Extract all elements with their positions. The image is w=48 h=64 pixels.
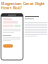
button[interactable]: Read more (3, 44, 13, 48)
staticText: Heart Risk? (1, 5, 22, 10)
staticText: Magnesium Can at Night (1, 1, 45, 6)
